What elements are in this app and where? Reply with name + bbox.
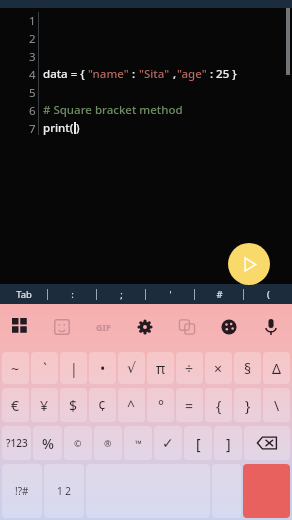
staticText: ® xyxy=(104,437,112,449)
staticText: © xyxy=(74,437,82,449)
staticText: ~ xyxy=(11,359,20,378)
button[interactable]: × xyxy=(205,352,232,384)
staticText: { xyxy=(216,396,222,415)
button[interactable] xyxy=(243,464,290,518)
staticText: = xyxy=(185,396,194,415)
button[interactable]: π xyxy=(147,352,174,384)
staticText: ) xyxy=(76,120,80,136)
staticText: , xyxy=(170,66,177,82)
staticText: % xyxy=(42,434,54,453)
staticText: 2 xyxy=(29,31,36,47)
button[interactable]: | xyxy=(60,352,87,384)
button[interactable]: ?123 xyxy=(2,426,31,460)
button[interactable]: } xyxy=(234,388,261,422)
staticText: ` xyxy=(43,359,47,378)
button[interactable]: ; xyxy=(97,284,145,304)
button[interactable]: Settings xyxy=(124,304,166,350)
button[interactable]: ÷ xyxy=(176,352,203,384)
staticText: data = { xyxy=(43,66,88,82)
button[interactable]: % xyxy=(33,426,62,460)
button[interactable]: § xyxy=(234,352,261,384)
staticText: ; xyxy=(120,288,123,301)
button[interactable]: $ xyxy=(60,388,87,422)
staticText: π xyxy=(156,359,166,378)
button[interactable]: : xyxy=(48,284,96,304)
button[interactable]: ¥ xyxy=(31,388,58,422)
staticText: ] xyxy=(226,434,231,453)
staticText: # Square bracket method xyxy=(43,102,183,118)
button[interactable]: ¢ xyxy=(89,388,116,422)
button[interactable] xyxy=(212,464,241,518)
staticText: ¢ xyxy=(98,396,107,415)
staticText: 3 xyxy=(29,49,36,65)
staticText: ^ xyxy=(127,396,136,415)
staticText: \ xyxy=(274,396,280,415)
button[interactable]: Run code xyxy=(228,243,270,285)
staticText: ✓ xyxy=(162,435,174,451)
button[interactable]: Tab xyxy=(0,284,47,304)
staticText: ( xyxy=(267,288,270,301)
button[interactable]: Translate xyxy=(166,304,208,350)
staticText: 7 xyxy=(29,121,36,137)
staticText: ¥ xyxy=(40,396,49,415)
button[interactable]: ' xyxy=(146,284,194,304)
button[interactable]: ` xyxy=(31,352,58,384)
staticText: : xyxy=(129,66,139,82)
staticText: : xyxy=(71,288,74,301)
staticText: 4 xyxy=(29,67,36,83)
button[interactable]: 1 2 xyxy=(44,464,84,518)
staticText: 1 2 xyxy=(57,484,72,498)
staticText: 1 xyxy=(29,13,36,29)
button[interactable]: = xyxy=(176,388,203,422)
staticText: ?123 xyxy=(6,436,28,450)
button[interactable]: !?# xyxy=(2,464,42,518)
button[interactable]: [ xyxy=(184,426,212,460)
button[interactable]: ® xyxy=(94,426,122,460)
staticText: 6 xyxy=(29,103,36,119)
button[interactable]: { xyxy=(205,388,232,422)
button[interactable]: Voice input xyxy=(250,304,292,350)
button[interactable]: • xyxy=(89,352,116,384)
button[interactable]: # xyxy=(195,284,243,304)
staticText: [ xyxy=(196,434,201,453)
staticText: : 25 } xyxy=(207,66,237,82)
staticText: GIF xyxy=(96,321,111,333)
staticText: $ xyxy=(69,396,78,415)
button[interactable]: \ xyxy=(263,388,290,422)
staticText: • xyxy=(100,359,106,378)
staticText: "name" xyxy=(88,66,129,82)
button[interactable]: ° xyxy=(147,388,174,422)
button[interactable]: ( xyxy=(244,284,292,304)
staticText: | xyxy=(70,359,78,378)
staticText: "Sita" xyxy=(139,66,170,82)
button[interactable]: Keyboard modes xyxy=(0,304,41,350)
button[interactable]: Stickers xyxy=(41,304,82,350)
staticText: √ xyxy=(127,360,136,376)
staticText: Tab xyxy=(16,288,32,301)
button[interactable]: ~ xyxy=(2,352,29,384)
button[interactable]: GIF xyxy=(82,304,124,350)
staticText: § xyxy=(244,359,252,378)
button[interactable]: © xyxy=(64,426,92,460)
button[interactable]: √ xyxy=(118,352,145,384)
staticText: } xyxy=(245,396,251,415)
staticText: # xyxy=(216,288,223,301)
staticText: ™ xyxy=(135,437,142,449)
button[interactable]: Δ xyxy=(263,352,290,384)
button[interactable]: ^ xyxy=(118,388,145,422)
staticText: 5 xyxy=(29,85,36,101)
button[interactable]: Themes xyxy=(208,304,250,350)
staticText: print( xyxy=(43,120,74,136)
button[interactable]: € xyxy=(2,388,29,422)
button[interactable]: ✓ xyxy=(154,426,182,460)
button[interactable]: Backspace xyxy=(244,426,290,460)
staticText: ° xyxy=(158,396,164,415)
staticText: ' xyxy=(169,288,172,301)
staticText: € xyxy=(11,396,20,415)
staticText: ÷ xyxy=(185,359,194,378)
staticText: × xyxy=(214,359,223,378)
staticText: Δ xyxy=(272,359,281,378)
button[interactable]: ] xyxy=(214,426,242,460)
button[interactable]: ™ xyxy=(124,426,152,460)
